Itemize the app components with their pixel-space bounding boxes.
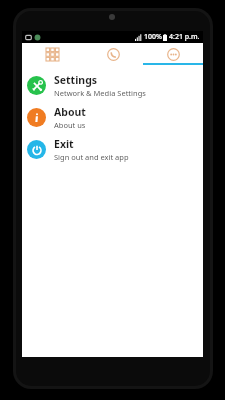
button[interactable]: Calls	[83, 43, 143, 65]
staticText: Network & Media Settings	[54, 88, 146, 98]
staticText: About	[54, 105, 86, 119]
button[interactable]: More	[143, 43, 203, 65]
staticText: Exit	[54, 137, 74, 151]
button[interactable]: Exit	[22, 133, 203, 165]
staticText: 100%	[144, 32, 162, 42]
staticText: Settings	[54, 73, 98, 87]
button[interactable]: Apps	[22, 43, 83, 65]
staticText: 4:21 p.m.	[169, 32, 200, 42]
staticText: About us	[54, 120, 86, 130]
staticText: Sign out and exit app	[54, 152, 129, 162]
button[interactable]: Settings	[22, 69, 203, 101]
button[interactable]: About	[22, 101, 203, 133]
